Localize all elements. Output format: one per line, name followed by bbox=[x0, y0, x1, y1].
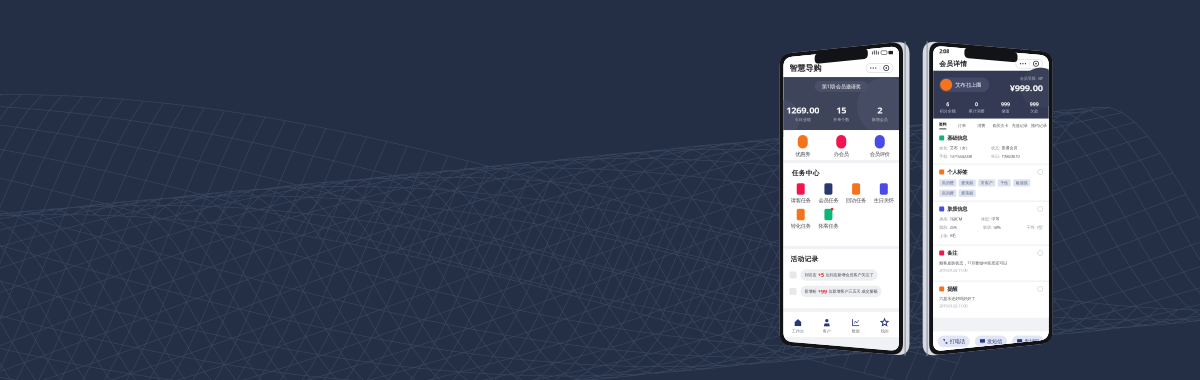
staticText: 六盘水还好吗好好了 bbox=[939, 296, 975, 301]
button[interactable]: 打电话 bbox=[938, 336, 970, 347]
staticText: 普通会员 bbox=[1001, 145, 1017, 150]
staticText: 今日业绩 bbox=[795, 117, 811, 122]
staticText: 爱美丽 bbox=[961, 180, 973, 185]
staticText: 姓名: bbox=[939, 145, 948, 151]
staticText: 会员详情 bbox=[939, 60, 967, 68]
button[interactable]: 办会员 bbox=[822, 135, 860, 158]
staticText: 位到店新增会员客户关注了 bbox=[825, 272, 873, 277]
staticText: 13715542338 bbox=[950, 154, 972, 159]
staticText: 活动记录 bbox=[790, 255, 818, 263]
staticText: 位新增客户三五天 成交量额 bbox=[828, 289, 877, 294]
staticText: 转化任务 bbox=[791, 223, 811, 229]
button[interactable]: 订单 bbox=[952, 123, 972, 128]
staticText: 生日关怀 bbox=[874, 197, 894, 204]
staticText: 6 bbox=[946, 101, 949, 108]
staticText: 订单 bbox=[958, 123, 966, 128]
staticText: 优惠券 bbox=[795, 151, 810, 158]
staticText: 体型: bbox=[981, 216, 990, 222]
button[interactable]: 发起聊 bbox=[1012, 336, 1044, 347]
staticText: 25% bbox=[950, 225, 957, 230]
staticText: 预约记录 bbox=[1031, 123, 1047, 128]
staticText: 上妆: bbox=[939, 233, 948, 238]
button[interactable]: 生日关怀 bbox=[870, 183, 898, 204]
staticText: 回访任务 bbox=[846, 197, 866, 204]
button[interactable]: 购买次卡 bbox=[991, 123, 1010, 128]
staticText: 999 bbox=[1030, 101, 1039, 108]
staticText: 消费 bbox=[977, 123, 985, 128]
button[interactable]: 回访任务 bbox=[842, 183, 870, 204]
staticText: 状态: bbox=[991, 145, 1000, 151]
button[interactable]: 工作台 bbox=[783, 319, 812, 333]
staticText: 储值 bbox=[1001, 109, 1009, 114]
button[interactable]: 消费 bbox=[972, 123, 991, 128]
button[interactable]: 会员评价 bbox=[860, 135, 899, 158]
staticText: 15 bbox=[836, 104, 846, 116]
staticText: 生日: bbox=[991, 154, 1000, 159]
staticText: 干性 bbox=[1000, 180, 1008, 185]
button[interactable]: 请客任务 bbox=[787, 183, 815, 204]
staticText: 拓客任务 bbox=[818, 223, 838, 229]
staticText: 数据 bbox=[852, 329, 860, 333]
staticText: 备注 bbox=[947, 250, 957, 256]
staticText: 0 bbox=[975, 101, 978, 108]
staticText: 购买次卡 bbox=[993, 123, 1009, 128]
staticText: 高消费 bbox=[942, 180, 954, 185]
staticText: +5 bbox=[818, 271, 824, 278]
staticText: 工作台 bbox=[792, 329, 804, 333]
staticText: 新增会员 bbox=[872, 117, 888, 122]
button[interactable]: Mini program menu bbox=[1016, 59, 1043, 68]
button[interactable]: 资料 bbox=[933, 122, 952, 129]
staticText: 会员任务 bbox=[818, 197, 838, 204]
staticText: 58% bbox=[993, 225, 1000, 230]
staticText: 2:08 bbox=[939, 48, 949, 55]
staticText: 顾客皮肤状态，12月要做中胚层还可以 bbox=[939, 260, 1007, 266]
staticText: ıllı bbox=[871, 49, 879, 56]
staticText: 2:08 bbox=[789, 49, 799, 56]
staticText: 积分余额 bbox=[940, 109, 956, 114]
staticText: 1994-08-10 bbox=[1001, 154, 1019, 159]
staticText: 充值记录 bbox=[1012, 123, 1028, 128]
button[interactable]: 预约记录 bbox=[1029, 123, 1049, 128]
button[interactable]: 发短信 bbox=[975, 336, 1007, 347]
staticText: 个人标签 bbox=[947, 169, 967, 175]
staticText: 手机: bbox=[939, 154, 948, 159]
staticText: ıllı bbox=[1021, 48, 1029, 55]
button[interactable]: 拓客任务 bbox=[815, 209, 842, 229]
staticText: 资料 bbox=[939, 122, 947, 127]
staticText: 肤质信息 bbox=[947, 206, 967, 212]
button[interactable]: 会员任务 bbox=[815, 183, 842, 204]
button[interactable]: Mini program menu bbox=[866, 63, 893, 72]
staticText: 艾布·拉上圈 bbox=[955, 81, 981, 88]
button[interactable]: 数据 bbox=[841, 319, 870, 333]
staticText: V毛 bbox=[950, 233, 956, 238]
button[interactable]: 转化任务 bbox=[787, 209, 815, 229]
staticText: 基础信息 bbox=[947, 135, 967, 141]
button[interactable]: 优惠券 bbox=[783, 135, 822, 158]
staticText: +99 bbox=[818, 288, 827, 295]
button[interactable]: 充值记录 bbox=[1010, 123, 1029, 128]
staticText: 168CM bbox=[950, 216, 963, 222]
staticText: 中等 bbox=[991, 216, 999, 221]
staticText: 客户 bbox=[823, 329, 831, 333]
staticText: 2 bbox=[877, 104, 882, 116]
staticText: 发短信 bbox=[987, 338, 1002, 345]
staticText: ¥999.00 bbox=[1010, 81, 1043, 94]
staticText: 脂肪: bbox=[939, 225, 948, 230]
staticText: 开单个数 bbox=[833, 117, 849, 122]
button[interactable]: 我的 bbox=[870, 319, 899, 333]
staticText: 1269.00 bbox=[786, 104, 819, 116]
button[interactable]: 客户 bbox=[812, 319, 841, 333]
staticText: 爱美丽 bbox=[961, 191, 973, 196]
button[interactable]: 到访店 bbox=[783, 269, 899, 281]
staticText: 到访店 bbox=[804, 272, 816, 277]
staticText: 高消费 bbox=[942, 191, 954, 196]
staticText: 累计消费 bbox=[968, 109, 984, 114]
staticText: 2019-01-02 11:00 bbox=[939, 303, 967, 308]
staticText: 我的 bbox=[881, 329, 889, 333]
staticText: 智慧导购 bbox=[789, 63, 821, 73]
staticText: 第1期·会员邀请奖 bbox=[822, 83, 861, 90]
staticText: 艾布（女） bbox=[950, 145, 970, 150]
staticText: 2019-01-02 11:00 bbox=[939, 268, 967, 273]
button[interactable]: 新增粉 bbox=[783, 286, 899, 297]
staticText: 999 bbox=[1001, 101, 1010, 108]
